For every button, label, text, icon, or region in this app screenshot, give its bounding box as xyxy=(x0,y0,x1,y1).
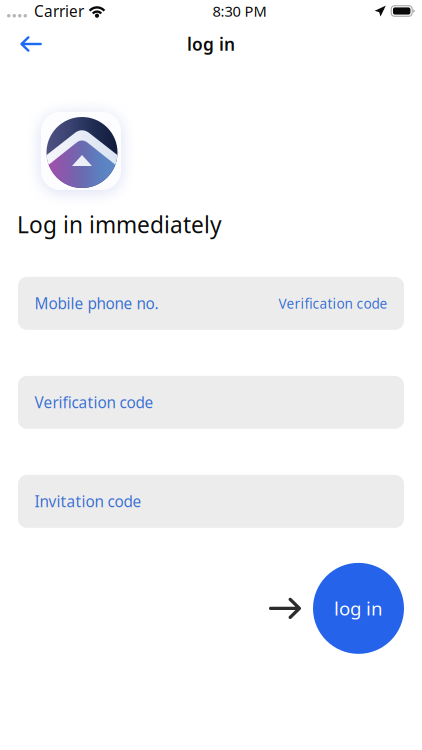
staticText: Carrier xyxy=(34,1,84,21)
staticText: Invitation code xyxy=(34,491,141,512)
button[interactable]: Back xyxy=(8,22,54,66)
staticText: log in xyxy=(334,596,383,621)
button[interactable]: log in xyxy=(313,563,404,654)
staticText: Log in immediately xyxy=(17,209,222,240)
staticText: log in xyxy=(187,32,235,56)
staticText: Mobile phone no. xyxy=(34,293,158,314)
button[interactable]: Verification code xyxy=(266,284,387,323)
staticText: Verification code xyxy=(34,392,153,413)
staticText: 8:30 PM xyxy=(213,1,267,21)
staticText: Verification code xyxy=(278,294,387,313)
